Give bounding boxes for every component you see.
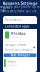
staticText: Connected [11, 36, 19, 38]
button[interactable]: Save changes [4, 53, 36, 57]
staticText: Account Settings [2, 0, 37, 6]
staticText: across every device you use. [2, 9, 38, 13]
staticText: Manage how you receive alerts [3, 3, 37, 10]
staticText: WhatsApp [11, 32, 26, 35]
staticText: Last run today [7, 64, 17, 66]
staticText: Backup [7, 60, 16, 63]
staticText: Sound and vibration [5, 48, 33, 52]
staticText: and keep your profile up to date [0, 5, 40, 12]
staticText: Notifications [5, 18, 22, 22]
staticText: Connected apps [5, 25, 29, 28]
staticText: Message preview [5, 43, 26, 47]
staticText: Save changes [10, 53, 29, 57]
